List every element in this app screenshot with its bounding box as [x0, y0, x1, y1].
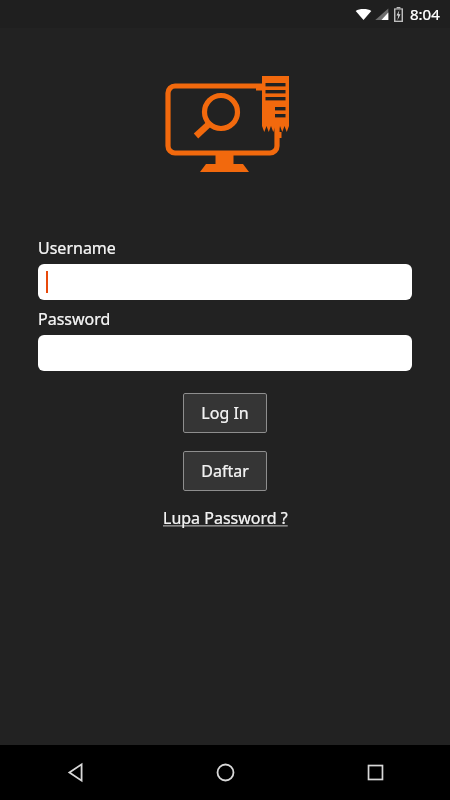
button[interactable]: Back: [0, 745, 150, 800]
staticText: 8:04: [410, 4, 440, 24]
button[interactable]: Recent apps: [300, 745, 450, 800]
staticText: Username: [38, 237, 116, 259]
staticText: Daftar: [201, 460, 249, 482]
button[interactable]: Username input: [38, 264, 412, 300]
button[interactable]: Home: [150, 745, 300, 800]
staticText: Log In: [201, 402, 249, 424]
button[interactable]: Daftar: [183, 451, 267, 491]
button[interactable]: Log In: [183, 393, 267, 433]
staticText: Password: [38, 308, 111, 330]
button[interactable]: Lupa Password ?: [159, 505, 292, 531]
button[interactable]: Password input: [38, 335, 412, 371]
